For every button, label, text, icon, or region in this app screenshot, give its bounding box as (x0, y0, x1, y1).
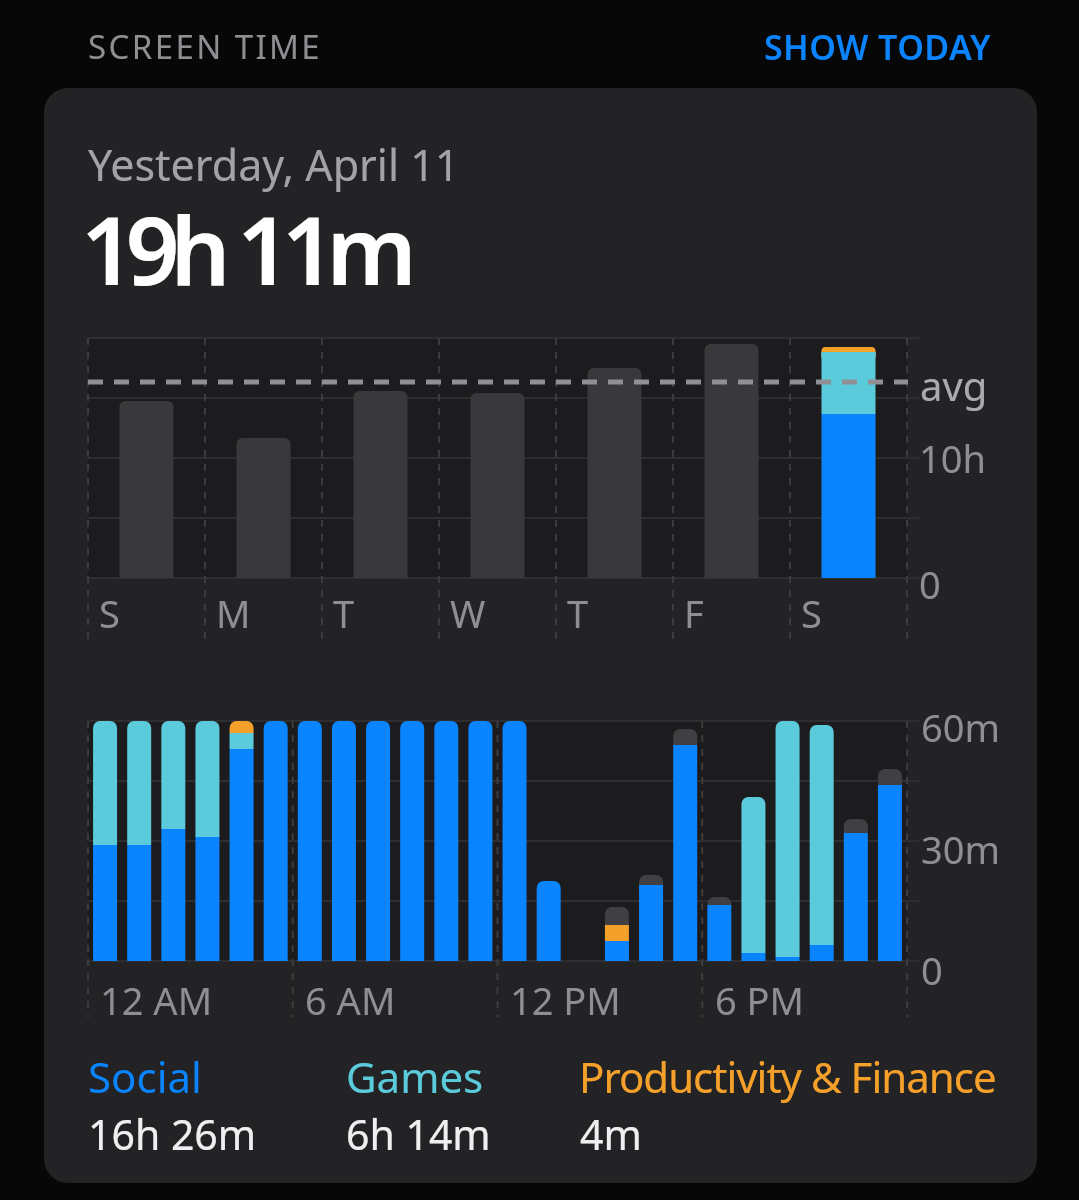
staticText: S (99, 587, 120, 639)
staticText: 10h (919, 432, 986, 484)
staticText: 19h 11m (81, 185, 408, 313)
staticText: Games (346, 1048, 484, 1105)
staticText: T (567, 587, 589, 639)
staticText: M (216, 587, 251, 639)
staticText: T (333, 587, 355, 639)
staticText: 6 PM (715, 974, 805, 1026)
staticText: Yesterday, April 11 (88, 135, 460, 194)
staticText: 12 PM (510, 974, 621, 1026)
staticText: S (801, 587, 822, 639)
staticText: 30m (921, 823, 1001, 875)
staticText: F (684, 587, 704, 639)
staticText: Productivity & Finance (579, 1048, 996, 1105)
staticText: 12 AM (100, 974, 213, 1026)
staticText: 4m (580, 1106, 642, 1162)
staticText: 0 (919, 558, 941, 610)
staticText: SCREEN TIME (88, 24, 323, 69)
staticText: 6h 14m (346, 1106, 491, 1162)
staticText: W (450, 587, 486, 639)
staticText: 6 AM (305, 974, 396, 1026)
button[interactable]: SHOW TODAY (0, 0, 228, 46)
staticText: 60m (921, 701, 1001, 753)
staticText: 0 (921, 944, 943, 996)
staticText: 16h 26m (88, 1106, 257, 1162)
staticText: Social (88, 1048, 202, 1105)
staticText: avg (920, 358, 988, 412)
